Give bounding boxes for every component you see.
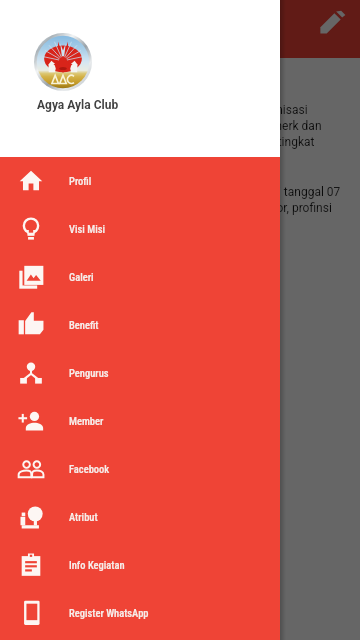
button[interactable]: Edit (313, 1, 353, 41)
staticText: Galeri (69, 271, 94, 283)
button[interactable]: Galeri (0, 253, 280, 301)
staticText: Visi Misi (69, 223, 106, 235)
button[interactable]: Visi Misi (0, 205, 280, 253)
button[interactable]: Profil (0, 157, 280, 205)
button[interactable]: Member (0, 397, 280, 445)
staticText: Benefit (69, 319, 99, 331)
staticText: Register WhatsApp (69, 607, 149, 619)
staticText: Info Kegiatan (69, 559, 125, 571)
button[interactable]: Facebook (0, 445, 280, 493)
staticText: Member (69, 415, 104, 427)
button[interactable]: Pengurus (0, 349, 280, 397)
button[interactable]: Info Kegiatan (0, 541, 280, 589)
staticText: Profil (69, 175, 92, 187)
button[interactable]: Atribut (0, 493, 280, 541)
staticText: Facebook (69, 463, 110, 475)
button[interactable]: Register WhatsApp (0, 589, 280, 637)
staticText: Agya Ayla Club didirikan secara resmi pa… (16, 185, 341, 231)
staticText: Atribut (69, 511, 98, 523)
staticText: Agya Ayla Club (AAC) adalah sebuah wadah… (16, 103, 322, 165)
button[interactable]: Open navigation drawer (10, 9, 50, 49)
staticText: Pengurus (69, 367, 109, 379)
button[interactable]: Benefit (0, 301, 280, 349)
staticText: Agya Ayla Club (37, 98, 119, 112)
